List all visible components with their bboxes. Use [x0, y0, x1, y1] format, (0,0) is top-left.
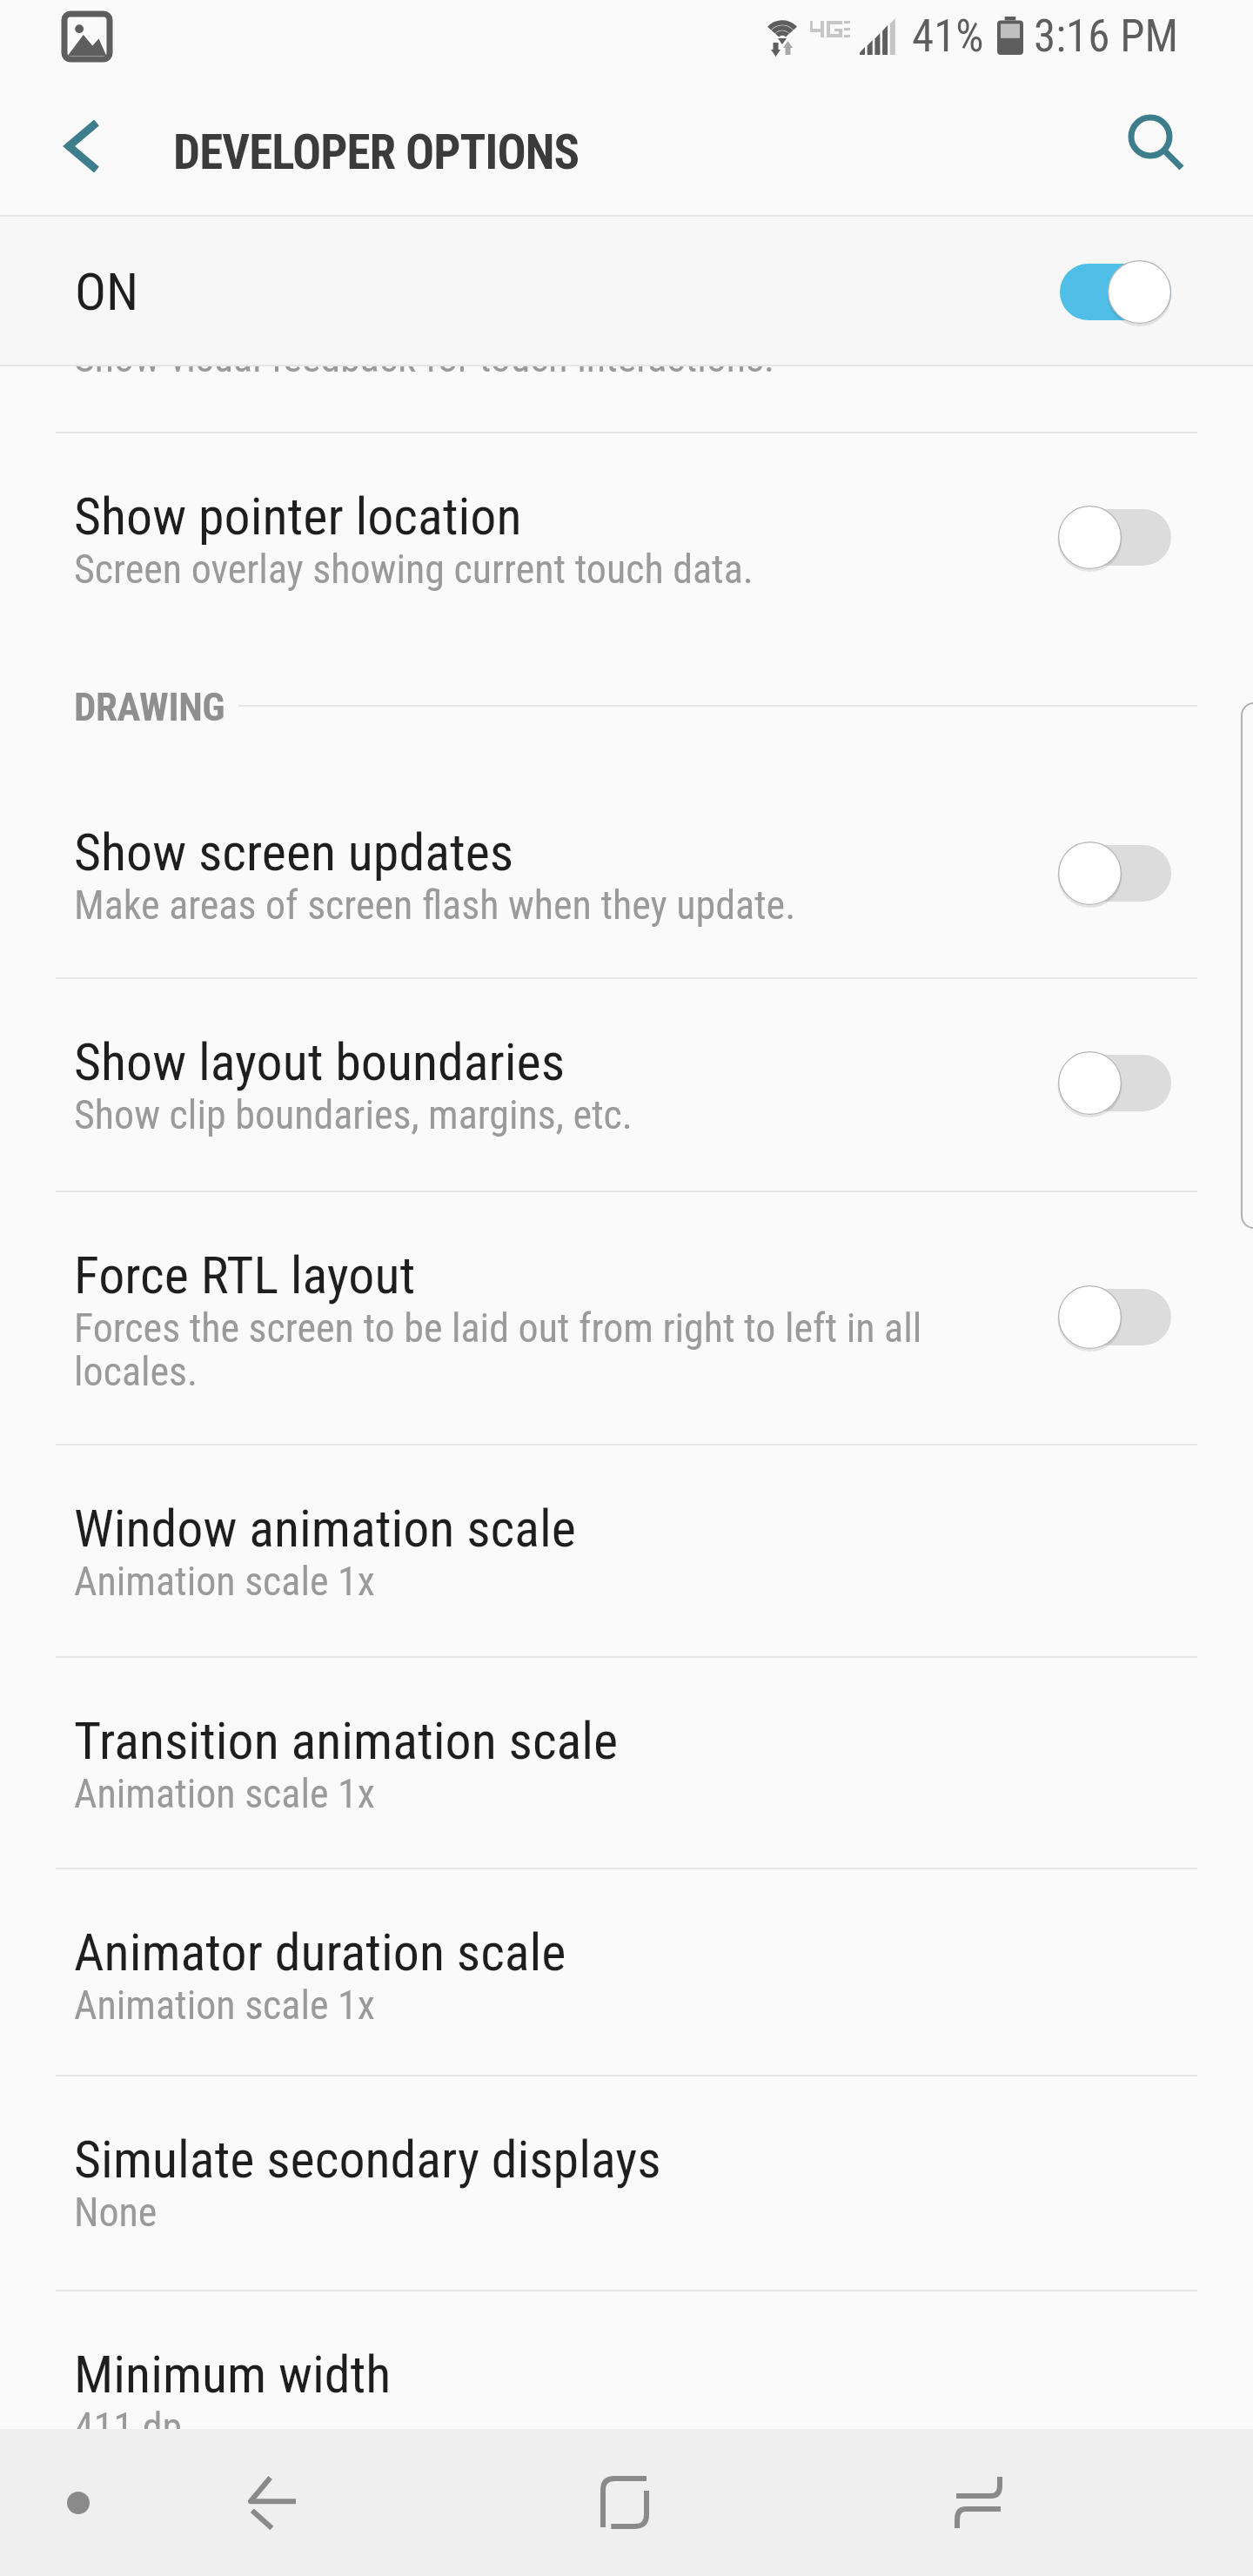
button[interactable]: Show screen updates	[0, 768, 1253, 979]
staticText: Show clip boundaries, margins, etc.	[74, 1094, 944, 1137]
staticText: 41%	[912, 10, 984, 63]
button[interactable]: Show pointer location	[0, 432, 1253, 643]
button[interactable]: Toggle, on	[1060, 259, 1171, 325]
staticText: Simulate secondary displays	[74, 2129, 661, 2190]
staticText: DEVELOPER OPTIONS	[173, 124, 580, 180]
staticText: Force RTL layout	[74, 1244, 416, 1305]
staticText: ON	[75, 261, 139, 322]
staticText: Make areas of screen flash when they upd…	[74, 884, 944, 928]
button[interactable]: Home	[509, 2429, 740, 2576]
staticText: Show layout boundaries	[74, 1031, 566, 1092]
button[interactable]: Transition animation scale	[0, 1656, 1253, 1868]
button[interactable]: Force RTL layout	[0, 1191, 1253, 1444]
button[interactable]: Animator duration scale	[0, 1868, 1253, 2079]
staticText: Show pointer location	[74, 486, 522, 547]
button[interactable]: Window animation scale	[0, 1444, 1253, 1655]
button[interactable]: Recents	[862, 2429, 1094, 2576]
button[interactable]: Simulate secondary displays	[0, 2075, 1253, 2286]
button[interactable]: Toggle, off	[1060, 1050, 1171, 1116]
button[interactable]: Toggle, off	[1060, 1285, 1171, 1350]
staticText: Animator duration scale	[74, 1922, 566, 1982]
staticText: Forces the screen to be laid out from ri…	[74, 1307, 944, 1394]
button[interactable]: Minimum width	[0, 2290, 1253, 2429]
staticText: 411 dp	[74, 2406, 944, 2429]
staticText: Animation scale 1x	[74, 1984, 944, 2028]
staticText: 3:16 PM	[1034, 10, 1178, 63]
button[interactable]: Navigate up	[13, 77, 152, 216]
staticText: Transition animation scale	[74, 1710, 619, 1771]
staticText: Minimum width	[74, 2344, 392, 2405]
staticText: Animation scale 1x	[74, 1560, 944, 1604]
button[interactable]: Show layout boundaries	[0, 977, 1253, 1189]
staticText: Animation scale 1x	[74, 1773, 944, 1816]
button[interactable]: Hide keyboard	[0, 2429, 157, 2576]
button[interactable]: Search	[1092, 77, 1240, 216]
staticText: Show visual feedback for touch interacti…	[74, 337, 775, 380]
staticText: Screen overlay showing current touch dat…	[74, 548, 944, 592]
button[interactable]: ON	[0, 218, 1253, 366]
staticText: DRAWING	[74, 684, 225, 730]
button[interactable]: Toggle, off	[1060, 841, 1171, 906]
staticText: Show screen updates	[74, 822, 514, 882]
staticText: None	[74, 2191, 944, 2235]
staticText: Window animation scale	[74, 1498, 576, 1559]
button[interactable]: Back	[157, 2429, 388, 2576]
button[interactable]: Toggle, off	[1060, 505, 1171, 570]
